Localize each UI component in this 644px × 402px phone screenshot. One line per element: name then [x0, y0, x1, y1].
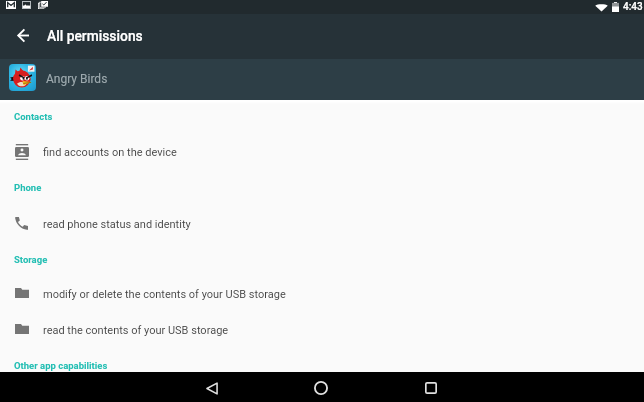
staticText: Contacts [14, 111, 53, 122]
button[interactable]: find accounts on the device [0, 135, 644, 169]
staticText: Angry Birds [46, 72, 108, 86]
staticText: read the contents of your USB storage [43, 324, 229, 337]
staticText: 4:43 [623, 1, 643, 13]
staticText: Phone [14, 182, 42, 193]
staticText: find accounts on the device [43, 146, 177, 159]
staticText: All permissions [47, 28, 143, 44]
staticText: read phone status and identity [43, 218, 191, 231]
staticText: modify or delete the contents of your US… [43, 288, 286, 301]
button[interactable]: Home [294, 372, 348, 402]
button[interactable]: Angry Birds [0, 59, 644, 100]
staticText: Other app capabilities [14, 360, 108, 371]
button[interactable]: read phone status and identity [0, 207, 644, 241]
button[interactable]: Recent apps [404, 372, 458, 402]
button[interactable]: Navigate up [0, 14, 46, 59]
staticText: Storage [14, 254, 48, 265]
button[interactable]: Back [185, 372, 239, 402]
button[interactable]: modify or delete the contents of your US… [0, 277, 644, 311]
button[interactable]: read the contents of your USB storage [0, 313, 644, 347]
